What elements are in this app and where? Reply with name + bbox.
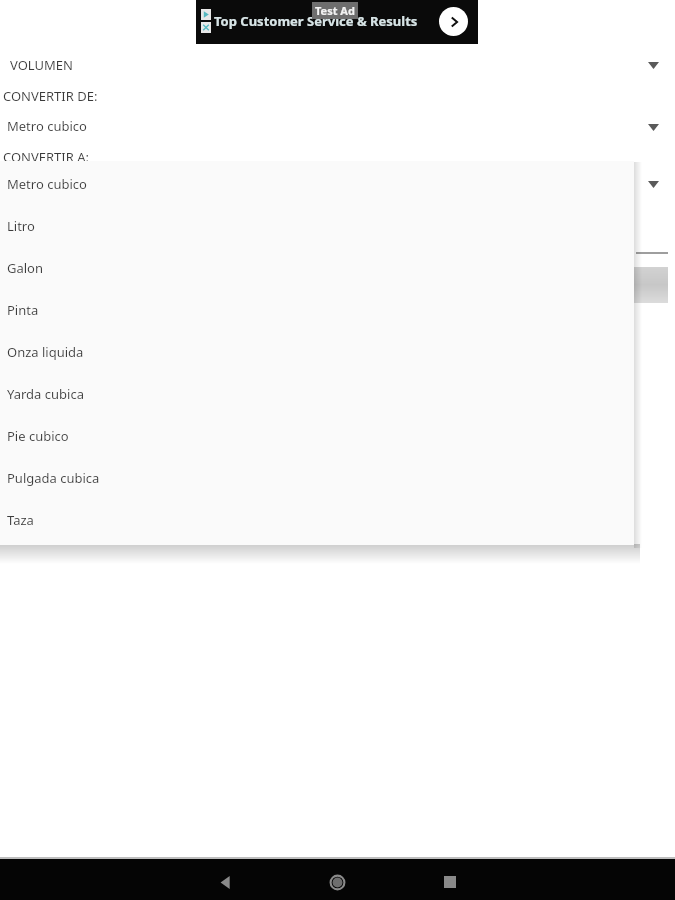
staticText: Litro xyxy=(7,217,35,235)
button[interactable]: Yarda cubica xyxy=(0,371,634,413)
staticText: Pie cubico xyxy=(7,427,69,445)
button[interactable]: Pinta xyxy=(0,287,634,329)
button[interactable]: Recent apps xyxy=(431,863,469,900)
staticText: Taza xyxy=(7,511,34,529)
staticText: Galon xyxy=(7,259,44,277)
button[interactable]: Pie cubico xyxy=(0,413,634,455)
staticText: Onza liquida xyxy=(7,343,84,361)
button[interactable]: Convertir xyxy=(634,267,668,303)
staticText: CONVERTIR DE: xyxy=(3,87,98,105)
button[interactable]: Onza liquida xyxy=(0,329,634,371)
button[interactable]: Open ad xyxy=(439,7,468,36)
button[interactable]: Metro cubico xyxy=(0,161,634,203)
staticText: Metro cubico xyxy=(7,175,87,193)
staticText: Pulgada cubica xyxy=(7,469,100,487)
staticText: Pinta xyxy=(7,301,39,319)
staticText: Metro cubico xyxy=(7,117,87,135)
button[interactable]: Galon xyxy=(0,245,634,287)
button[interactable]: Back xyxy=(206,863,244,900)
button[interactable]: Taza xyxy=(0,497,634,539)
button[interactable]: Litro xyxy=(0,203,634,245)
staticText: CONVERTIR A: xyxy=(3,148,89,166)
staticText: Yarda cubica xyxy=(7,385,84,403)
button[interactable]: VOLUMEN xyxy=(0,45,675,83)
button[interactable]: Metro cubico xyxy=(0,108,675,144)
staticText: VOLUMEN xyxy=(10,56,73,74)
staticText: Top Customer Service & Results xyxy=(214,12,418,30)
button[interactable]: Home xyxy=(318,863,356,900)
button[interactable]: Pulgada cubica xyxy=(0,455,634,497)
staticText: Test Ad xyxy=(315,3,355,18)
button[interactable]: Advertisement xyxy=(196,0,478,44)
